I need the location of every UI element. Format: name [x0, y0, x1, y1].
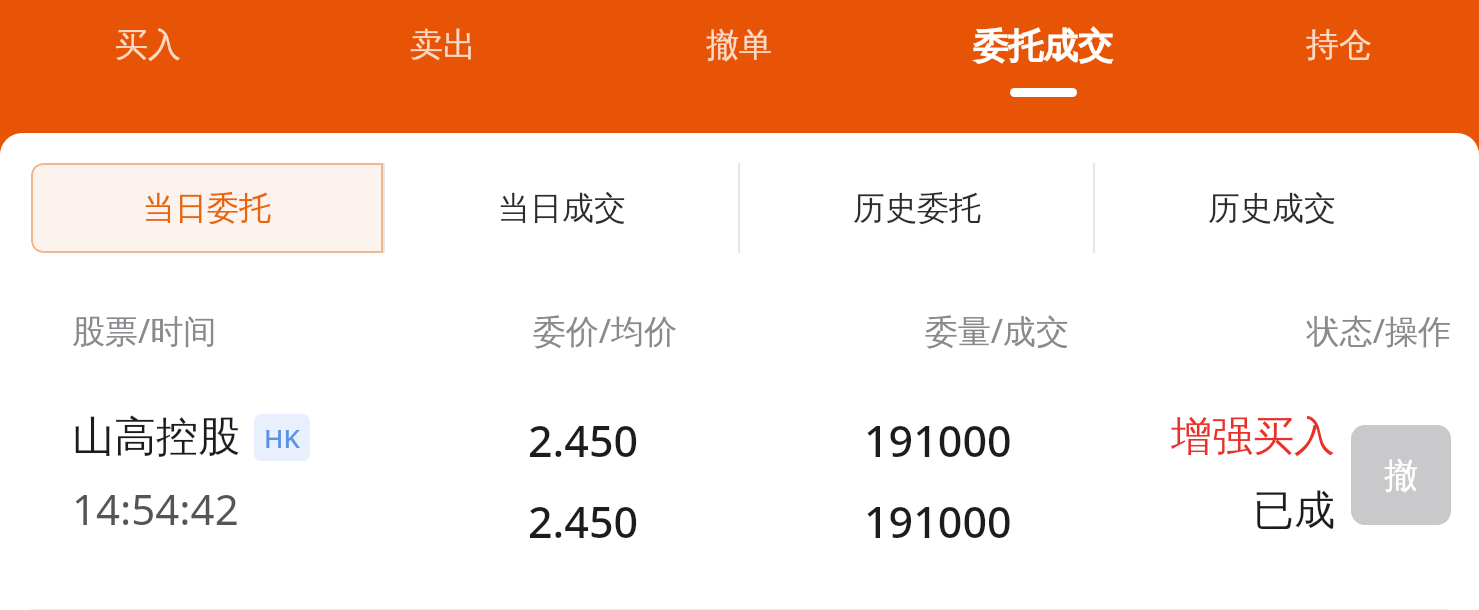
- staticText: 委托成交: [973, 24, 1113, 68]
- staticText: 委量/成交: [787, 308, 1069, 353]
- button[interactable]: 撤单: [1351, 425, 1451, 525]
- button[interactable]: 卖出: [295, 0, 591, 133]
- staticText: 191000: [864, 492, 1012, 551]
- button[interactable]: 买入: [0, 0, 295, 133]
- staticText: 持仓: [1306, 24, 1372, 66]
- button[interactable]: 当日成交: [385, 163, 738, 253]
- staticText: 历史委托: [853, 188, 981, 228]
- staticText: HK: [264, 420, 300, 455]
- staticText: 增强买入: [1171, 411, 1335, 463]
- staticText: 卖出: [410, 24, 476, 66]
- button[interactable]: 撤单: [591, 0, 887, 133]
- staticText: 撤: [1384, 454, 1418, 497]
- button[interactable]: 历史成交: [1095, 163, 1448, 253]
- button[interactable]: 当日委托: [31, 163, 383, 253]
- button[interactable]: 山高控股: [0, 411, 1479, 571]
- staticText: 2.450: [528, 411, 639, 470]
- button[interactable]: 持仓: [1198, 0, 1479, 133]
- staticText: 191000: [864, 411, 1012, 470]
- staticText: 历史成交: [1208, 188, 1336, 228]
- staticText: 状态/操作: [1169, 308, 1451, 353]
- staticText: 当日委托: [143, 188, 271, 228]
- staticText: 山高控股: [72, 411, 240, 464]
- button[interactable]: 历史委托: [740, 163, 1093, 253]
- staticText: 撤单: [706, 24, 772, 66]
- button[interactable]: 委托成交: [887, 0, 1198, 133]
- staticText: 买入: [115, 24, 181, 66]
- staticText: 当日成交: [498, 188, 626, 228]
- staticText: 股票/时间: [72, 308, 395, 353]
- staticText: 委价/均价: [395, 308, 677, 353]
- staticText: 14:54:42: [72, 480, 239, 537]
- staticText: 2.450: [528, 492, 639, 551]
- staticText: 已成: [1253, 485, 1335, 537]
